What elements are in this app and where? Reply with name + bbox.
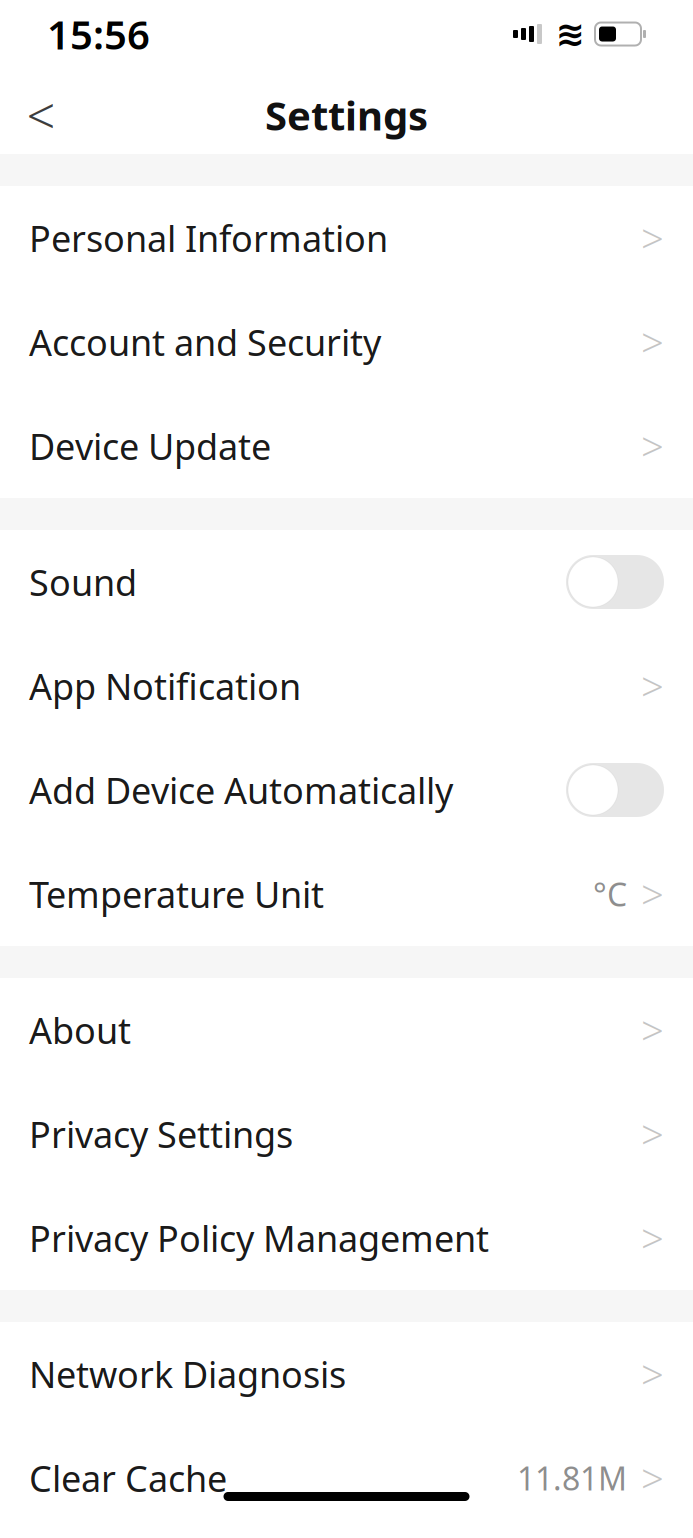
staticText: 11.81M [517, 1457, 627, 1499]
button[interactable]: Device Update [0, 394, 693, 498]
staticText: °C [593, 873, 627, 915]
staticText: Device Update [29, 422, 271, 470]
staticText: Privacy Settings [29, 1110, 293, 1158]
staticText: Clear Cache [29, 1454, 227, 1502]
staticText: Temperature Unit [29, 870, 324, 918]
button[interactable]: Clear Cache [0, 1426, 693, 1530]
button[interactable]: Back [12, 86, 70, 144]
button[interactable]: Network Diagnosis [0, 1322, 693, 1426]
staticText: > [641, 659, 664, 712]
staticText: > [641, 315, 664, 368]
button[interactable]: Add Device Automatically [0, 738, 693, 842]
staticText: > [641, 419, 664, 472]
button[interactable]: Privacy Settings [0, 1082, 693, 1186]
button[interactable]: Temperature Unit [0, 842, 693, 946]
staticText: > [641, 1347, 664, 1400]
staticText: App Notification [29, 662, 301, 710]
staticText: Account and Security [29, 318, 381, 366]
staticText: Personal Information [29, 214, 388, 262]
staticText: ≋ [555, 14, 584, 54]
staticText: > [641, 1211, 664, 1264]
button[interactable]: Account and Security [0, 290, 693, 394]
staticText: > [641, 211, 664, 264]
button[interactable]: Sound [0, 530, 693, 634]
staticText: Sound [29, 558, 137, 606]
staticText: Add Device Automatically [29, 766, 453, 814]
staticText: Privacy Policy Management [29, 1214, 489, 1262]
staticText: 15:56 [47, 7, 150, 60]
button[interactable]: About [0, 978, 693, 1082]
staticText: > [641, 1107, 664, 1160]
staticText: About [29, 1006, 131, 1054]
staticText: Settings [265, 88, 428, 141]
staticText: > [641, 1003, 664, 1056]
staticText: > [641, 867, 664, 920]
staticText: < [26, 81, 55, 149]
button[interactable]: App Notification [0, 634, 693, 738]
staticText: > [641, 1451, 664, 1504]
button[interactable]: Privacy Policy Management [0, 1186, 693, 1290]
staticText: Network Diagnosis [29, 1350, 346, 1398]
button[interactable]: Personal Information [0, 186, 693, 290]
